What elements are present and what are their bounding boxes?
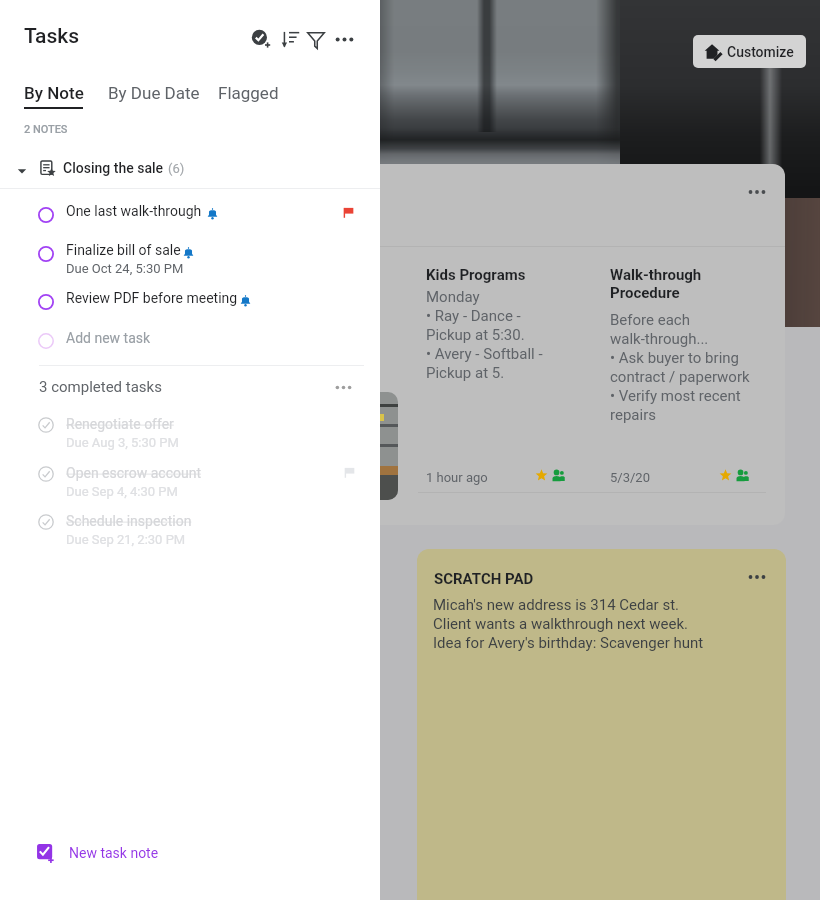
staticText: Micah's new address is 314 Cedar st. Cli… xyxy=(433,596,704,652)
button[interactable]: Tasks xyxy=(24,24,80,49)
staticText: 2 NOTES xyxy=(24,123,68,136)
button[interactable]: Review PDF before meeting xyxy=(0,287,380,317)
button[interactable]: By Due Date xyxy=(108,83,200,103)
button[interactable]: Schedule inspection xyxy=(0,507,380,551)
button[interactable]: 3 completed tasks xyxy=(0,374,380,400)
staticText: Tasks xyxy=(24,24,80,49)
button[interactable]: By Note xyxy=(24,83,84,109)
staticText: Flagged xyxy=(218,83,279,103)
staticText: (6) xyxy=(168,161,185,176)
staticText: Due Oct 24, 5:30 PM xyxy=(66,261,184,276)
button[interactable]: Add new task xyxy=(0,326,380,356)
button[interactable]: Add task xyxy=(248,26,274,52)
staticText: Closing the sale xyxy=(63,160,164,176)
button[interactable]: Filter xyxy=(303,27,329,53)
staticText: Customize xyxy=(727,44,794,60)
staticText: By Note xyxy=(24,83,84,103)
staticText: Finalize bill of sale xyxy=(66,242,181,258)
button[interactable]: Customize xyxy=(693,35,806,68)
staticText: Add new task xyxy=(66,330,151,346)
button[interactable]: Scratch pad options xyxy=(745,565,769,589)
staticText: Due Sep 21, 2:30 PM xyxy=(66,532,186,547)
staticText: 5/3/20 xyxy=(610,470,650,485)
button[interactable]: More options xyxy=(331,26,357,52)
staticText: Due Aug 3, 5:30 PM xyxy=(66,435,179,450)
staticText: Open escrow account xyxy=(66,465,201,481)
staticText: Review PDF before meeting xyxy=(66,290,238,306)
button[interactable]: Flagged xyxy=(218,83,279,103)
staticText: By Due Date xyxy=(108,83,200,103)
button[interactable]: Open escrow account xyxy=(0,459,380,503)
button[interactable]: Sort xyxy=(277,26,303,52)
staticText: SCRATCH PAD xyxy=(434,570,534,588)
staticText: Monday • Ray - Dance - Pickup at 5:30. •… xyxy=(426,288,543,382)
button[interactable]: Note options xyxy=(745,180,769,204)
button[interactable]: Finalize bill of sale xyxy=(0,239,380,281)
staticText: New task note xyxy=(69,845,159,861)
button[interactable]: One last walk-through xyxy=(0,200,380,230)
button[interactable]: Renegotiate offer xyxy=(0,410,380,454)
staticText: 1 hour ago xyxy=(426,470,488,485)
button[interactable]: New task note xyxy=(0,838,175,868)
staticText: Before each walk-through... • Ask buyer … xyxy=(610,311,750,424)
staticText: Renegotiate offer xyxy=(66,416,174,432)
staticText: Due Sep 4, 4:30 PM xyxy=(66,484,178,499)
staticText: Walk-through Procedure xyxy=(610,266,702,302)
staticText: Kids Programs xyxy=(426,266,526,284)
staticText: One last walk-through xyxy=(66,203,202,219)
staticText: 3 completed tasks xyxy=(39,378,162,396)
button[interactable]: Closing the sale xyxy=(0,155,380,183)
staticText: Schedule inspection xyxy=(66,513,192,529)
